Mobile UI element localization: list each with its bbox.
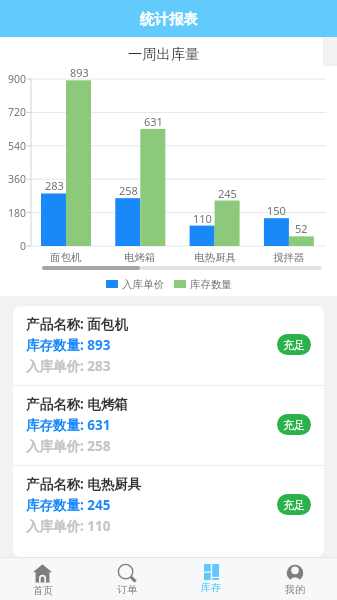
staticText: 库存数量: 631 xyxy=(26,416,111,434)
staticText: 52 xyxy=(295,221,308,235)
staticText: 245 xyxy=(218,186,237,200)
staticText: 库存数量: 245 xyxy=(26,496,111,514)
staticText: 150 xyxy=(267,203,286,217)
button[interactable]: 产品名称: 面包机 xyxy=(13,306,324,385)
staticText: 258 xyxy=(119,183,138,197)
staticText: 产品名称: 电烤箱 xyxy=(26,395,128,413)
staticText: 入库单价: 283 xyxy=(26,357,111,375)
staticText: 库存数量 xyxy=(190,278,232,291)
staticText: 入库单价: 110 xyxy=(26,517,111,535)
button[interactable]: Orders xyxy=(85,558,169,600)
staticText: 产品名称: 面包机 xyxy=(26,315,128,333)
button[interactable]: Inventory xyxy=(169,558,253,600)
staticText: 631 xyxy=(144,114,163,128)
staticText: 180 xyxy=(8,206,27,220)
button[interactable]: 充足 xyxy=(277,494,311,515)
staticText: 720 xyxy=(8,105,27,119)
staticText: 首页 xyxy=(33,584,53,597)
staticText: 充足 xyxy=(283,418,305,432)
button[interactable]: Home xyxy=(0,558,85,600)
staticText: 库存 xyxy=(201,581,221,594)
staticText: 订单 xyxy=(117,583,137,596)
staticText: 360 xyxy=(8,172,27,186)
button[interactable]: 统计报表 xyxy=(0,0,337,37)
staticText: 我的 xyxy=(285,583,305,596)
button[interactable]: 充足 xyxy=(277,334,311,355)
button[interactable]: 产品名称: 电烤箱 xyxy=(13,386,324,465)
staticText: 283 xyxy=(45,178,64,192)
staticText: 统计报表 xyxy=(140,10,198,28)
staticText: 540 xyxy=(8,139,27,153)
staticText: 产品名称: 电热厨具 xyxy=(26,475,142,493)
staticText: 入库单价 xyxy=(122,278,164,291)
staticText: 入库单价: 258 xyxy=(26,437,111,455)
button[interactable]: Profile xyxy=(253,558,337,600)
button[interactable]: 充足 xyxy=(277,414,311,435)
staticText: 充足 xyxy=(283,338,305,352)
staticText: 面包机 xyxy=(50,251,82,264)
staticText: 一周出库量 xyxy=(128,45,200,61)
staticText: 900 xyxy=(8,72,27,86)
staticText: 0 xyxy=(20,239,27,253)
staticText: 110 xyxy=(193,211,212,225)
staticText: 893 xyxy=(70,65,89,79)
staticText: 电热厨具 xyxy=(194,251,236,264)
staticText: 搅拌器 xyxy=(273,251,305,264)
staticText: 库存数量: 893 xyxy=(26,336,111,354)
button[interactable]: 产品名称: 电热厨具 xyxy=(13,466,324,557)
staticText: 电烤箱 xyxy=(124,251,156,264)
staticText: 充足 xyxy=(283,498,305,512)
